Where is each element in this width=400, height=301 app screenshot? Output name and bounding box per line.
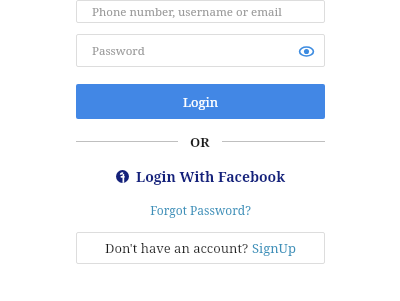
staticText: Phone number, username or email [92,4,282,20]
button[interactable]: Show password [297,42,315,60]
button[interactable]: Don't have an account? [76,232,325,264]
button[interactable]: Login [76,84,325,119]
staticText: OR [190,133,210,149]
staticText: Login [183,93,219,111]
staticText: Login With Facebook [136,167,286,186]
staticText: Password [92,43,145,59]
staticText: Forgot Password? [150,202,251,218]
button[interactable]: Forgot Password? [76,201,325,219]
button[interactable]: Password [76,34,325,67]
staticText: SignUp [252,239,296,257]
button[interactable]: Login With Facebook [76,165,325,187]
staticText: Don't have an account? [105,239,252,257]
button[interactable]: Phone number, username or email [76,0,325,23]
